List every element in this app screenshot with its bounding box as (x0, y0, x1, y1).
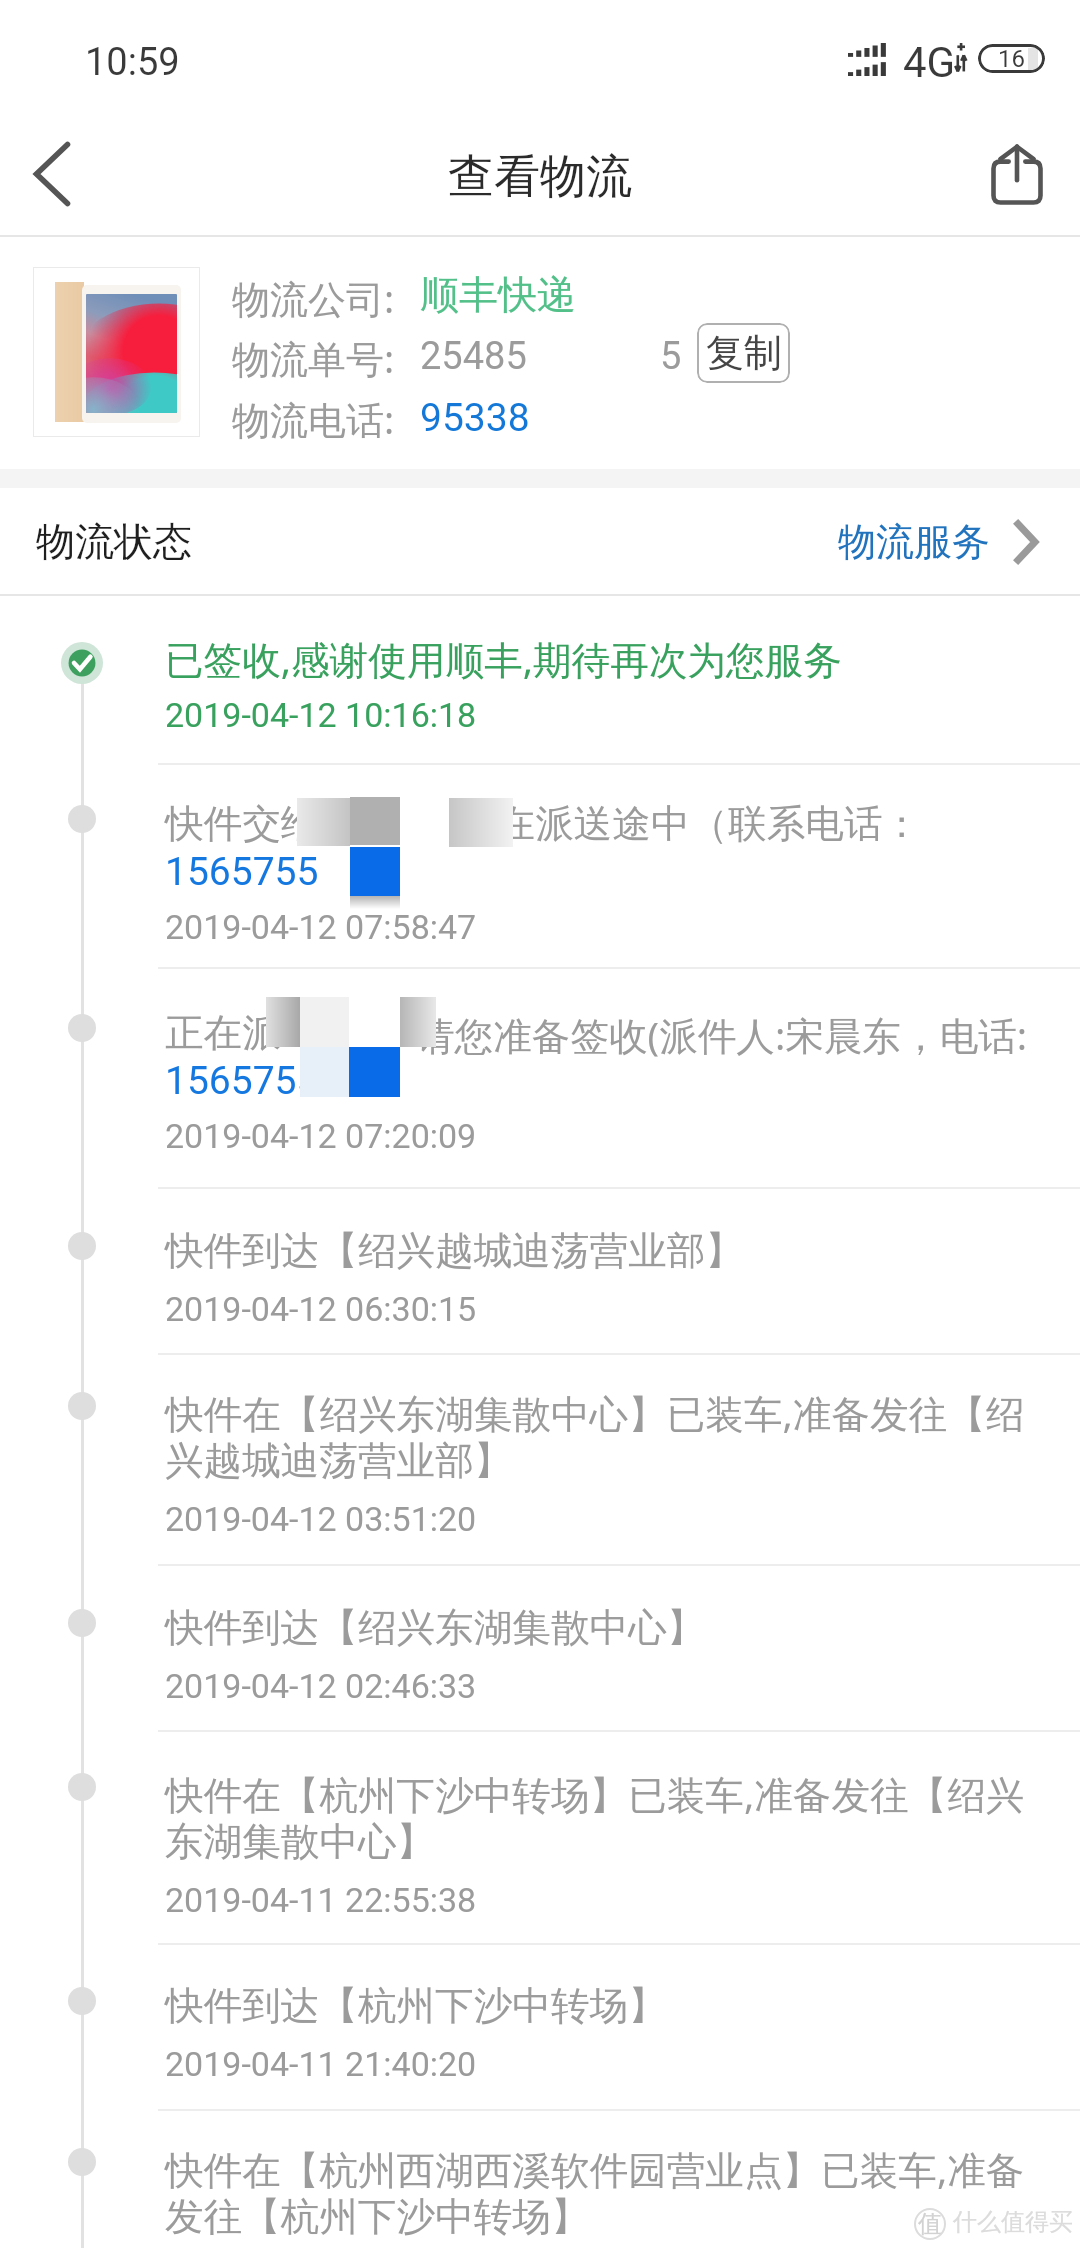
staticText: 查看物流 (448, 148, 632, 206)
staticText: 25485 (420, 334, 527, 379)
staticText: 5 (660, 334, 682, 379)
staticText: 2019-04-11 21:40:20 (165, 2044, 477, 2084)
staticText: 发往【杭州下沙中转场】 (165, 2193, 590, 2242)
staticText: 正在派 (165, 1009, 281, 1058)
staticText: 顺丰快递 (420, 270, 576, 319)
button[interactable]: 复制 (697, 323, 790, 383)
staticText: 2019-04-11 22:55:38 (165, 1880, 477, 1920)
staticText: 2019-04-12 07:20:09 (165, 1116, 477, 1156)
staticText: 物流服务 (838, 518, 990, 566)
staticText: 物流公司: (232, 272, 395, 324)
button[interactable]: Share (954, 112, 1080, 236)
staticText: 2019-04-12 06:30:15 (165, 1289, 477, 1329)
staticText: 2019-04-12 03:51:20 (165, 1499, 477, 1539)
staticText: 已签收,感谢使用顺丰,期待再次为您服务 (165, 633, 842, 686)
staticText: 1565755 (165, 849, 319, 895)
staticText: 16 (998, 45, 1025, 73)
staticText: 快件到达【杭州下沙中转场】 (165, 1982, 667, 2031)
staticText: 值 (918, 2209, 942, 2239)
staticText: 2019-04-12 02:46:33 (165, 1666, 477, 1706)
staticText: 1565755 (165, 1058, 319, 1104)
staticText: 快件在【杭州下沙中转场】已装车,准备发往【绍兴 (165, 1768, 1025, 1821)
staticText: 快件交给 (165, 800, 320, 849)
staticText: 快件到达【绍兴越城迪荡营业部】 (165, 1227, 744, 1276)
staticText: 2019-04-12 07:58:47 (165, 907, 477, 947)
staticText: 物流状态 (36, 517, 192, 566)
staticText: 快件在【绍兴东湖集散中心】已装车,准备发往【绍 (165, 1387, 1025, 1440)
staticText: 4G (903, 38, 956, 87)
button[interactable]: Back (0, 112, 110, 236)
staticText: 95338 (420, 395, 530, 441)
staticText: 什么值得买 (953, 2207, 1073, 2237)
staticText: 快件到达【绍兴东湖集散中心】 (165, 1604, 706, 1653)
staticText: 复制 (706, 329, 782, 377)
staticText: 快件在【杭州西湖西溪软件园营业点】已装车,准备 (165, 2143, 1025, 2196)
staticText: 物流电话: (232, 393, 395, 445)
staticText: 请您准备签收(派件人:宋晨东，电话: (416, 1009, 1028, 1062)
staticText: 2019-04-12 10:16:18 (165, 695, 477, 735)
staticText: 物流单号: (232, 332, 395, 384)
staticText: 兴越城迪荡营业部】 (165, 1437, 513, 1486)
staticText: 东湖集散中心】 (165, 1818, 436, 1867)
staticText: 正在派送途中（联系电话： (458, 800, 922, 849)
button[interactable]: 物流服务 (838, 518, 1038, 566)
staticText: 10:59 (85, 40, 180, 85)
